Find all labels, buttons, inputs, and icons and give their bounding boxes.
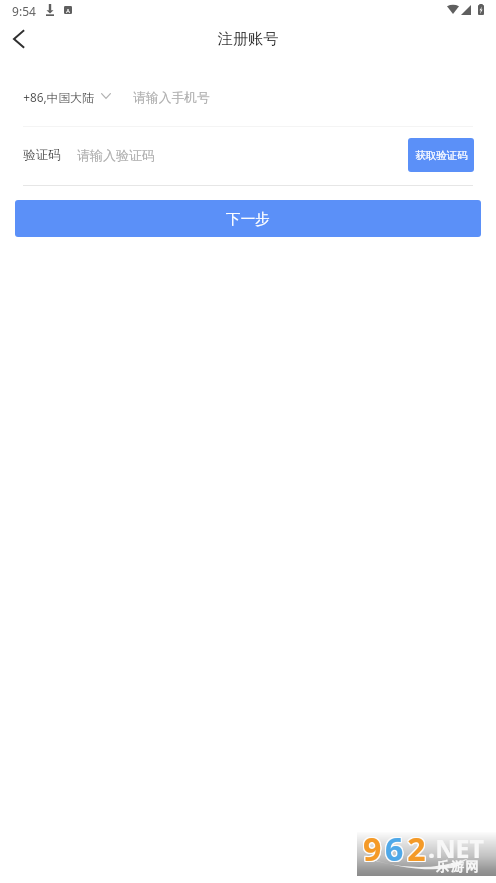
button[interactable]: 获取验证码 — [408, 138, 474, 172]
staticText: 9 — [362, 826, 384, 870]
staticText: 9:54 — [12, 3, 36, 19]
staticText: 6 — [385, 828, 407, 872]
button[interactable]: 请输入验证码 — [77, 140, 252, 170]
staticText: 6 — [386, 828, 408, 872]
staticText: 6 — [386, 827, 408, 871]
staticText: 9 — [363, 827, 385, 871]
staticText: 2 — [407, 827, 428, 871]
staticText: 6 — [384, 827, 406, 871]
staticText: 注册账号 — [0, 29, 496, 48]
staticText: 2 — [408, 827, 429, 871]
staticText: .NET — [428, 831, 484, 865]
staticText: 下一步 — [226, 210, 270, 228]
staticText: 9 — [362, 828, 384, 872]
staticText: 9 — [364, 826, 386, 870]
button[interactable]: Back — [0, 16, 40, 60]
staticText: 验证码 — [23, 147, 61, 163]
staticText: 2 — [406, 828, 427, 872]
staticText: 2 — [406, 827, 427, 871]
staticText: 请输入手机号 — [133, 90, 210, 106]
staticText: 2 — [407, 826, 428, 870]
staticText: 9 — [363, 826, 385, 870]
staticText: 请输入验证码 — [77, 147, 155, 163]
staticText: 9 — [364, 828, 386, 872]
staticText: 6 — [384, 828, 406, 872]
button[interactable]: 下一步 — [15, 200, 481, 237]
staticText: +86,中国大陆 — [23, 89, 94, 105]
staticText: A — [66, 7, 70, 14]
staticText: 6 — [385, 827, 407, 871]
staticText: 9 — [364, 827, 386, 871]
staticText: 2 — [408, 828, 429, 872]
staticText: 乐游网 — [436, 858, 480, 874]
staticText: 2 — [406, 826, 427, 870]
staticText: 6 — [386, 826, 408, 870]
button[interactable]: 请输入手机号 — [133, 82, 473, 112]
staticText: 6 — [385, 826, 407, 870]
staticText: 6 — [384, 826, 406, 870]
staticText: 2 — [407, 828, 428, 872]
staticText: 9 — [362, 827, 384, 871]
staticText: 获取验证码 — [415, 149, 468, 162]
staticText: 9 — [363, 828, 385, 872]
staticText: 2 — [408, 826, 429, 870]
button[interactable]: +86,中国大陆 — [23, 82, 110, 112]
